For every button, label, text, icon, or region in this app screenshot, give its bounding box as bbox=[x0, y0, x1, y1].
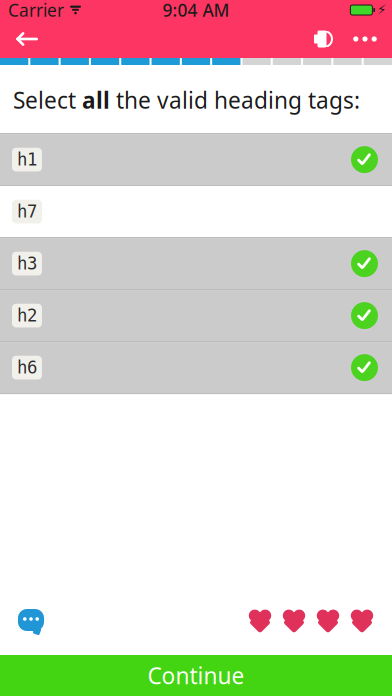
button[interactable]: Sound bbox=[306, 21, 342, 57]
button[interactable]: Discuss bbox=[0, 599, 46, 641]
button[interactable]: Continue bbox=[0, 655, 392, 696]
staticText: 9:04 AM bbox=[162, 0, 229, 21]
staticText: Select bbox=[13, 85, 82, 115]
staticText: h3 bbox=[17, 254, 37, 273]
staticText: all bbox=[82, 85, 110, 115]
button[interactable]: h6 bbox=[0, 342, 392, 394]
staticText: ⚡︎ bbox=[377, 2, 386, 17]
button[interactable]: h7 bbox=[0, 186, 392, 238]
staticText: Carrier bbox=[8, 0, 64, 21]
staticText: the valid heading tags: bbox=[110, 85, 360, 115]
staticText: h6 bbox=[17, 358, 37, 377]
staticText: h1 bbox=[17, 150, 37, 169]
staticText: Continue bbox=[147, 660, 244, 690]
button[interactable]: h1 bbox=[0, 134, 392, 186]
button[interactable]: More options bbox=[342, 21, 392, 57]
button[interactable]: Back bbox=[0, 20, 40, 58]
staticText: h2 bbox=[17, 306, 37, 325]
staticText: h7 bbox=[17, 202, 37, 221]
button[interactable]: h2 bbox=[0, 290, 392, 342]
button[interactable]: h3 bbox=[0, 238, 392, 290]
